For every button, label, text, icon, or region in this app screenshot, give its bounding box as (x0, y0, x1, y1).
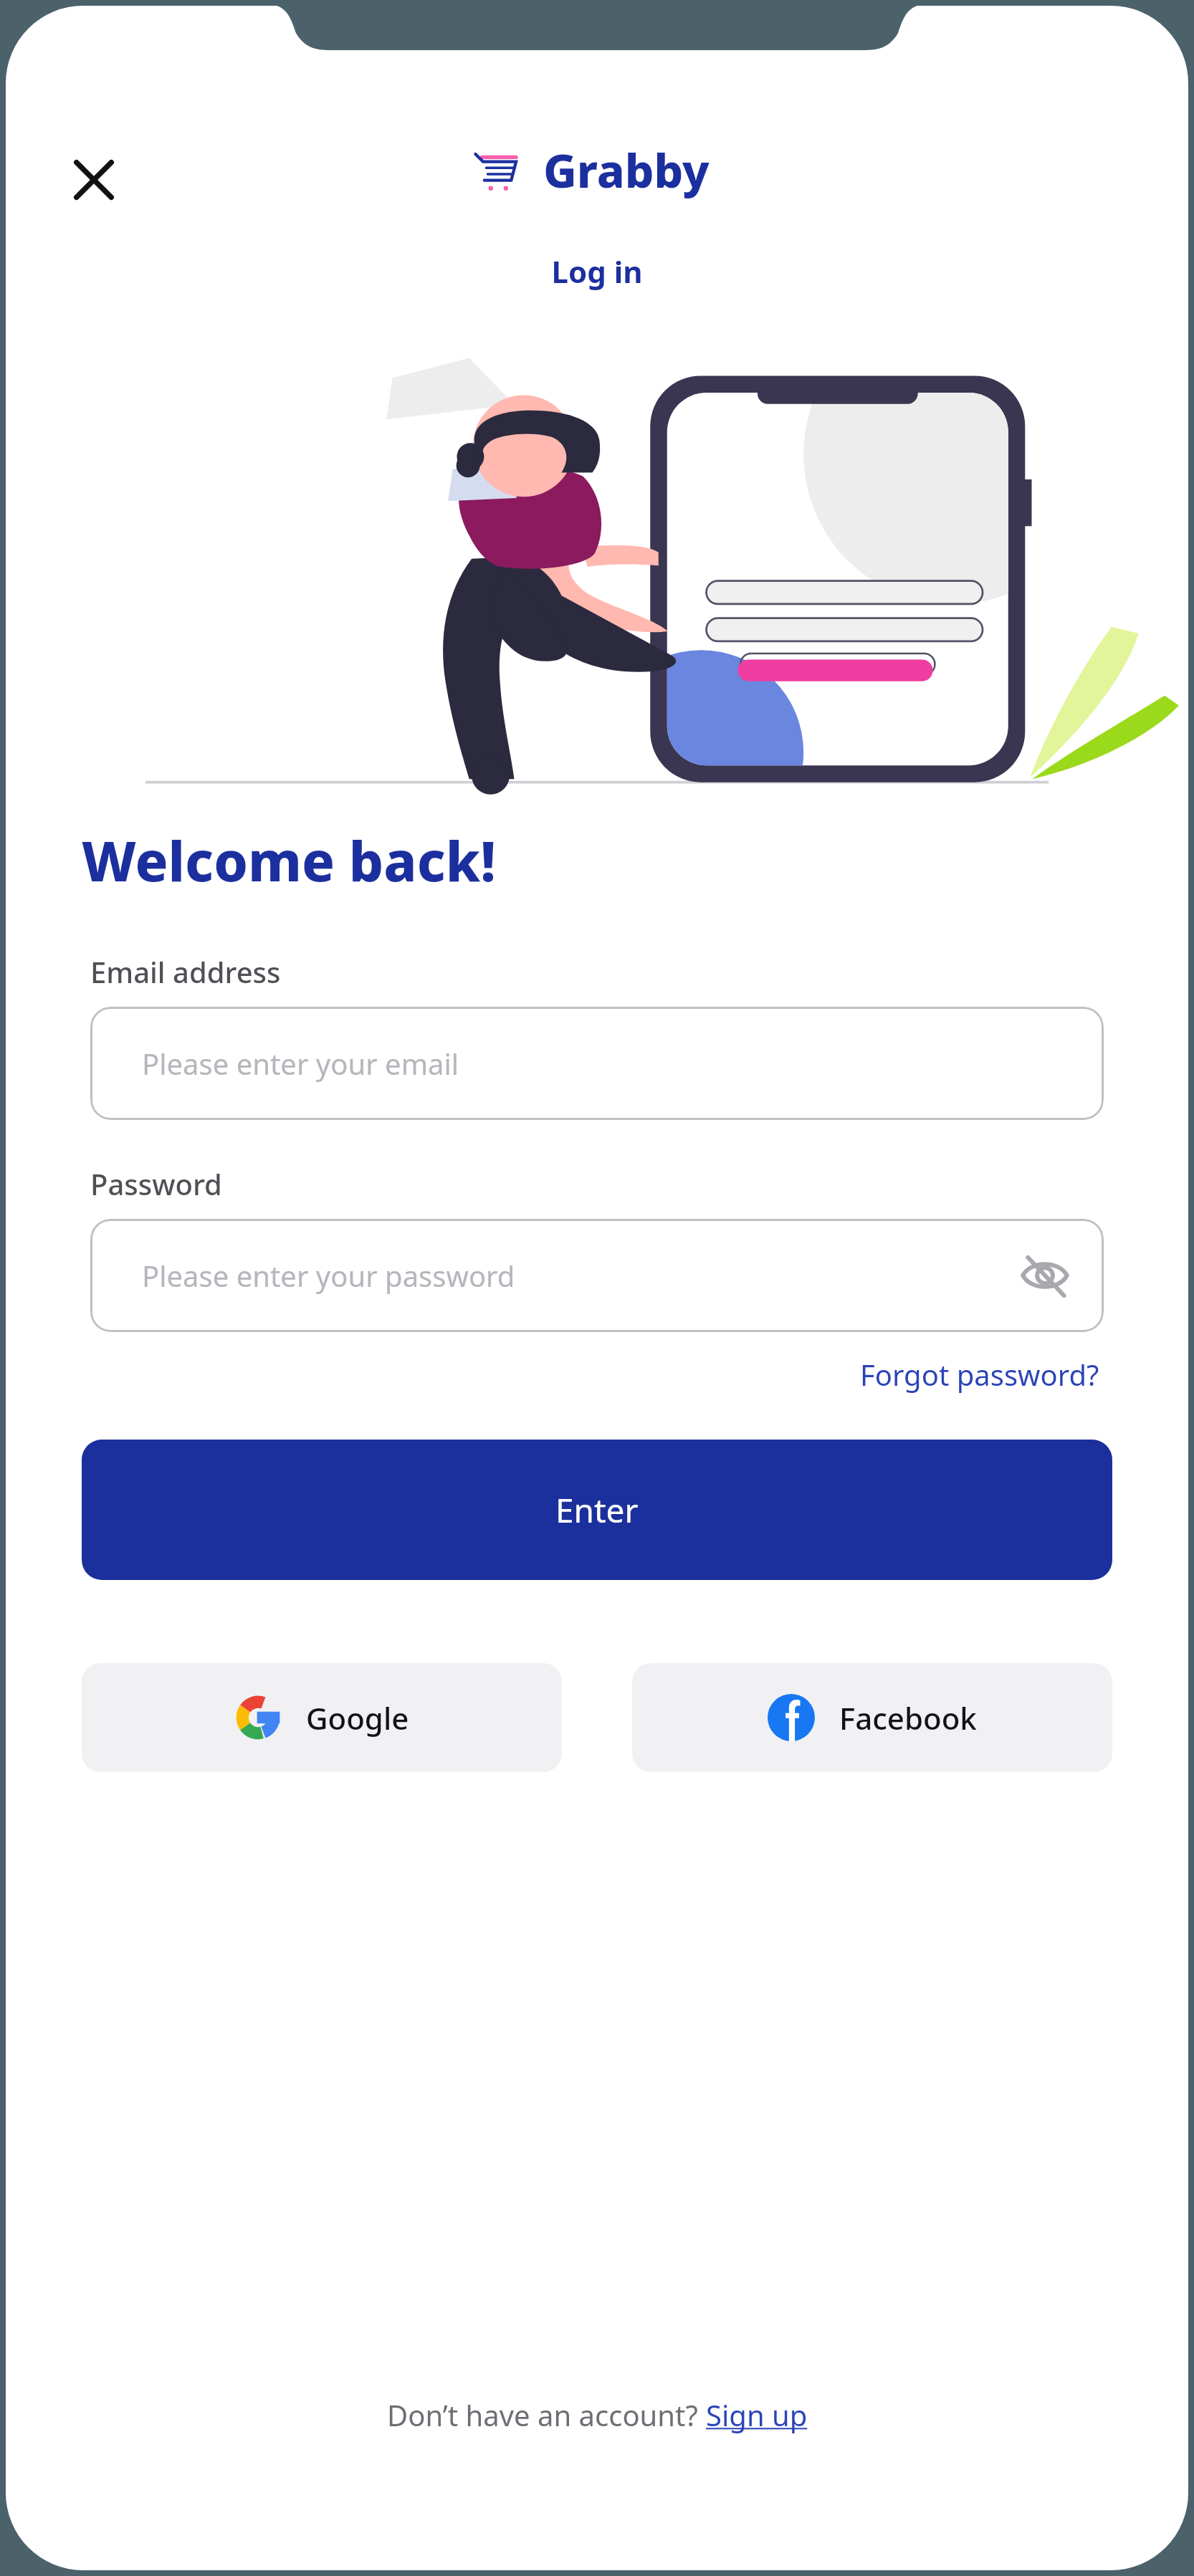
button[interactable]: Facebook (632, 1663, 1112, 1772)
button[interactable]: Forgot password? (856, 1351, 1104, 1398)
staticText: Log in (6, 251, 1188, 292)
staticText: Enter (555, 1488, 639, 1533)
button[interactable]: Google (82, 1663, 562, 1772)
staticText: Email address (90, 952, 281, 991)
button[interactable]: Enter (82, 1440, 1112, 1580)
staticText: Password (90, 1164, 222, 1203)
staticText: Google (306, 1698, 409, 1738)
button[interactable]: Close (50, 136, 138, 224)
staticText: Welcome back! (82, 823, 496, 898)
button[interactable]: Please enter your email (90, 1007, 1104, 1120)
staticText: Sign up (706, 2395, 808, 2434)
staticText: Forgot password? (860, 1355, 1099, 1394)
button[interactable]: Sign up (706, 2395, 808, 2434)
staticText: Please enter your password (142, 1256, 515, 1295)
button[interactable]: Please enter your password (90, 1219, 1104, 1332)
staticText: Facebook (839, 1698, 977, 1738)
staticText: Grabby (543, 139, 710, 201)
button[interactable]: Show password (1006, 1237, 1084, 1314)
staticText: Don’t have an account? (387, 2395, 706, 2434)
staticText: Please enter your email (142, 1044, 459, 1083)
